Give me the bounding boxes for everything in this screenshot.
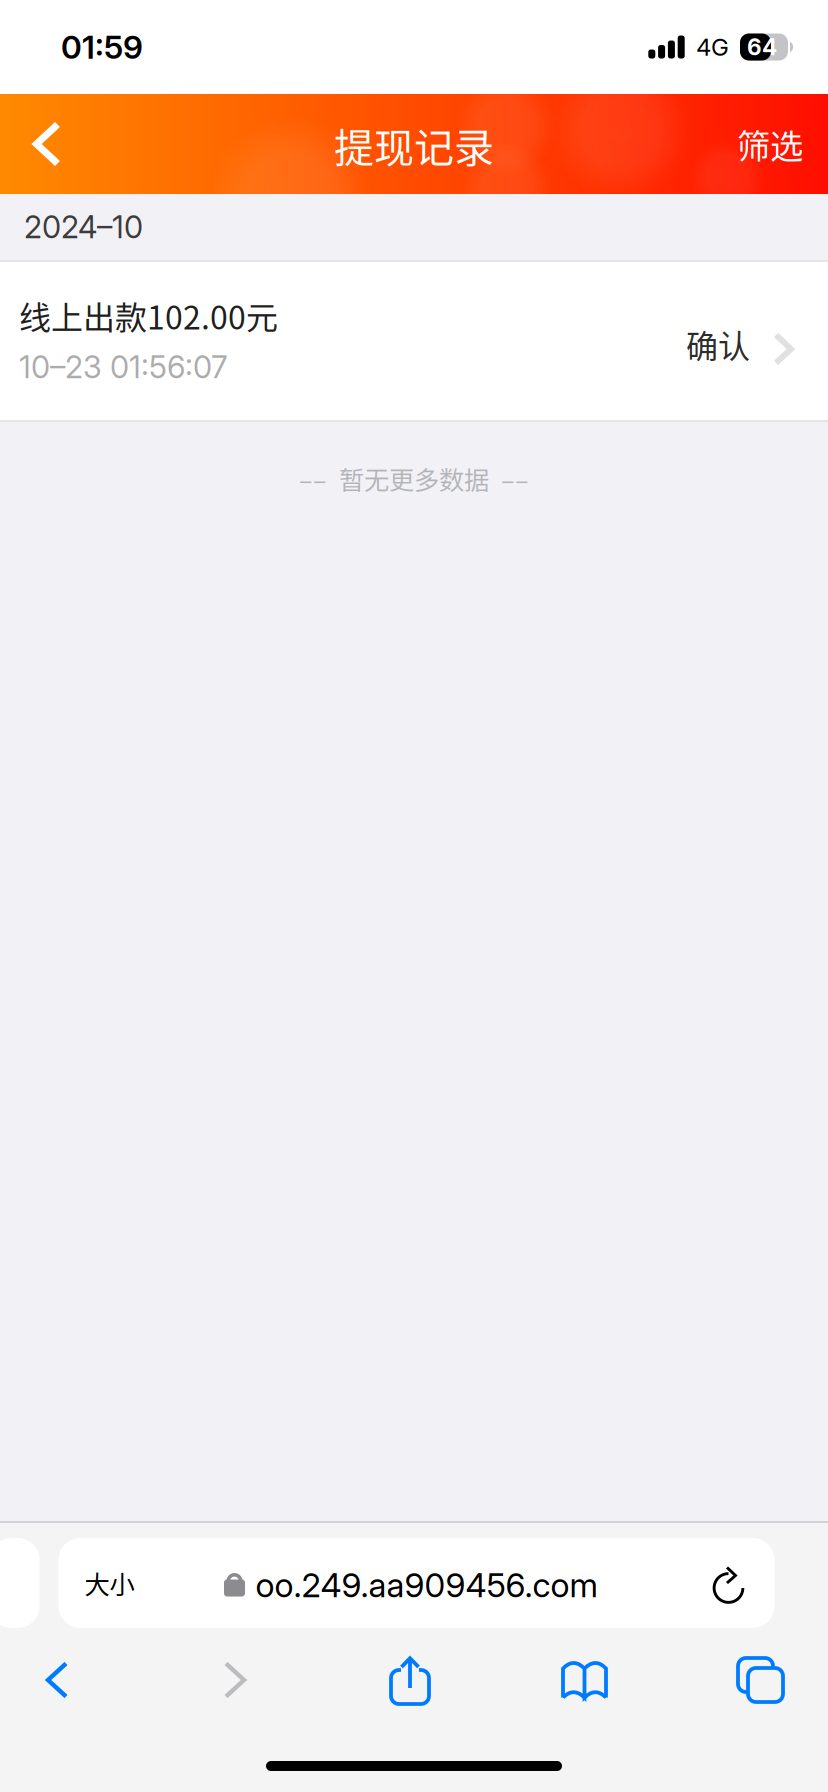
staticText: 2024–10 <box>24 208 143 245</box>
staticText: 线上出款102.00元 <box>19 292 278 339</box>
staticText: 64 <box>747 33 777 61</box>
staticText: 01:59 <box>61 28 143 66</box>
button[interactable]: 大小 <box>58 1538 774 1628</box>
staticText: 提现记录 <box>334 116 494 174</box>
staticText: 筛选 <box>737 120 803 168</box>
staticText: 大小 <box>84 1565 134 1601</box>
staticText: –– 暂无更多数据 –– <box>299 460 529 497</box>
button[interactable]: 筛选 <box>737 94 828 194</box>
staticText: 10–23 01:56:07 <box>19 349 228 386</box>
button[interactable]: Back <box>0 94 94 194</box>
staticText: oo.249.aa909456.com <box>255 1565 597 1605</box>
staticText: 确认 <box>686 321 750 367</box>
button[interactable]: Tabs <box>672 1652 828 1708</box>
button[interactable]: 线上出款102.00元 <box>0 262 828 420</box>
button[interactable]: Back <box>0 1652 147 1708</box>
button[interactable]: Forward <box>147 1652 323 1708</box>
button[interactable]: Share <box>323 1652 497 1708</box>
button[interactable]: Bookmarks <box>497 1652 672 1708</box>
staticText: 4G <box>696 32 729 61</box>
